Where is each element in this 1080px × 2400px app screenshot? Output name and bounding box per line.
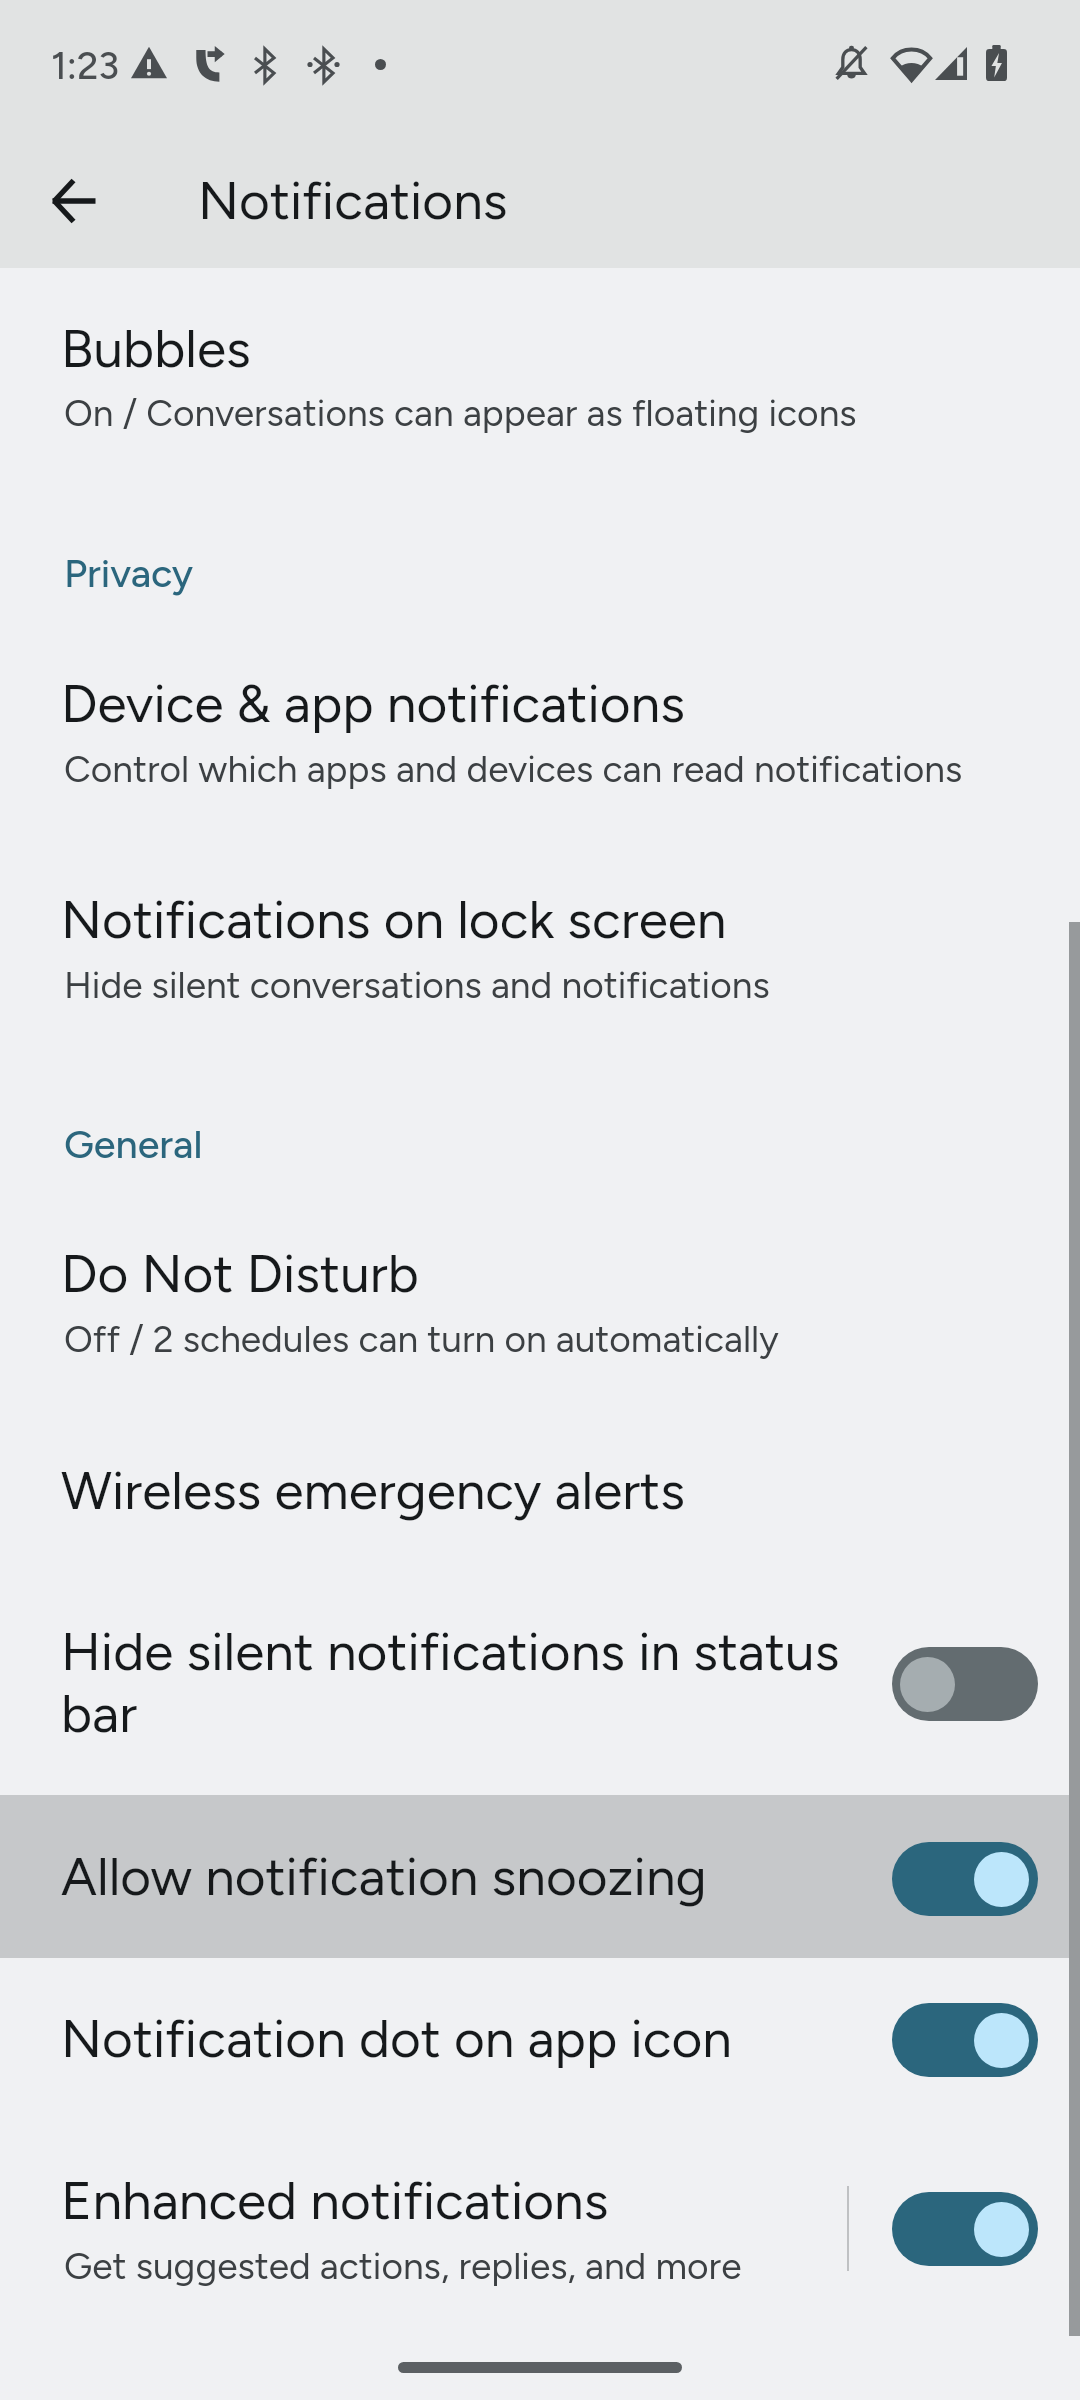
staticText: Bubbles — [61, 317, 251, 381]
staticText: bar — [61, 1682, 138, 1746]
staticText: Enhanced notifications — [61, 2169, 609, 2233]
staticText: Notifications on lock screen — [61, 888, 727, 952]
button[interactable]: Notification dot on app icon — [0, 1975, 1080, 2138]
staticText: Notifications — [198, 169, 508, 233]
button[interactable]: Switch on — [892, 1842, 1038, 1916]
button[interactable]: Switch off — [892, 1647, 1038, 1721]
staticText: On / Conversations can appear as floatin… — [64, 391, 857, 436]
staticText: Privacy — [64, 549, 194, 596]
button[interactable]: Hide silent notifications in status — [0, 1605, 1080, 1795]
button[interactable]: Back — [26, 153, 122, 249]
button[interactable]: Notifications on lock screen — [0, 855, 1080, 1045]
button[interactable]: Bubbles — [0, 282, 1080, 472]
button[interactable]: Enhanced notifications — [0, 2160, 1080, 2350]
staticText: Device & app notifications — [61, 672, 685, 736]
button[interactable]: Device & app notifications — [0, 640, 1080, 830]
staticText: Control which apps and devices can read … — [64, 747, 963, 792]
staticText: Do Not Disturb — [61, 1242, 419, 1306]
staticText: 1:23 — [51, 43, 120, 89]
button[interactable]: Switch on — [892, 2192, 1038, 2266]
staticText: Wireless emergency alerts — [61, 1459, 685, 1523]
staticText: Allow notification snoozing — [61, 1845, 707, 1909]
button[interactable]: Do Not Disturb — [0, 1210, 1080, 1400]
button[interactable]: Wireless emergency alerts — [0, 1450, 1080, 1570]
staticText: Get suggested actions, replies, and more — [64, 2244, 742, 2289]
staticText: Off / 2 schedules can turn on automatica… — [64, 1317, 779, 1362]
staticText: General — [64, 1120, 203, 1167]
staticText: Notification dot on app icon — [61, 2007, 732, 2071]
staticText: Hide silent notifications in status — [61, 1620, 840, 1684]
staticText: Hide silent conversations and notificati… — [64, 963, 770, 1008]
button[interactable]: Allow notification snoozing — [0, 1795, 1080, 1958]
button[interactable]: Switch on — [892, 2003, 1038, 2077]
